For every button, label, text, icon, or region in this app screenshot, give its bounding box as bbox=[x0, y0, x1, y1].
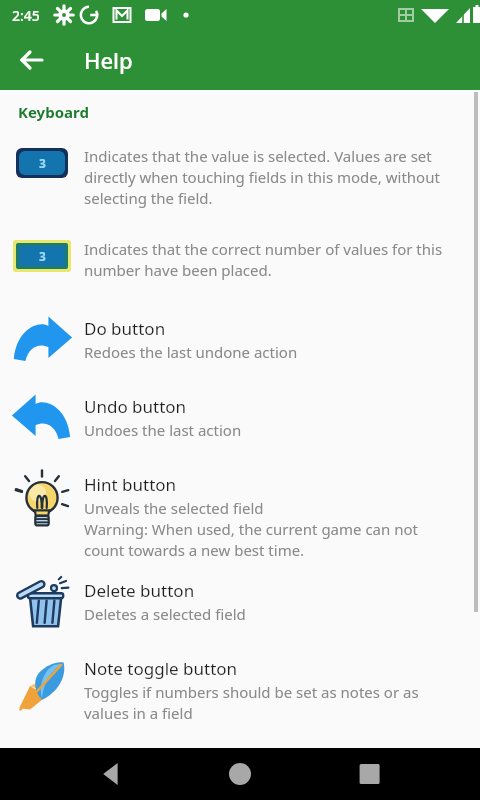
button[interactable]: Delete button bbox=[0, 577, 480, 633]
button[interactable]: 3 bbox=[0, 144, 480, 209]
staticText: Undo button bbox=[84, 395, 187, 418]
button[interactable]: Recents bbox=[348, 752, 392, 796]
staticText: Unveals the selected field Warning: When… bbox=[84, 498, 458, 561]
staticText: Note toggle button bbox=[84, 657, 238, 680]
staticText: 3 bbox=[39, 155, 46, 171]
button[interactable]: Undo button bbox=[0, 393, 480, 443]
staticText: 2:45 bbox=[12, 6, 40, 25]
button[interactable]: 3 bbox=[0, 237, 480, 281]
staticText: Indicates that the value is selected. Va… bbox=[84, 146, 458, 209]
button[interactable]: Home bbox=[218, 752, 262, 796]
button[interactable]: Back bbox=[88, 752, 132, 796]
button[interactable]: Hint button bbox=[0, 471, 480, 561]
staticText: Do button bbox=[84, 317, 166, 340]
button[interactable]: Back bbox=[8, 36, 56, 84]
staticText: Indicates that the correct number of val… bbox=[84, 239, 458, 281]
staticText: Help bbox=[84, 45, 133, 75]
staticText: 3 bbox=[39, 248, 46, 264]
staticText: Toggles if numbers should be set as note… bbox=[84, 682, 458, 724]
button[interactable]: Note toggle button bbox=[0, 655, 480, 724]
staticText: Deletes a selected field bbox=[84, 604, 246, 624]
staticText: Hint button bbox=[84, 473, 177, 496]
staticText: Redoes the last undone action bbox=[84, 342, 298, 362]
button[interactable]: Do button bbox=[0, 315, 480, 365]
staticText: Undoes the last action bbox=[84, 420, 242, 440]
staticText: Delete button bbox=[84, 579, 195, 602]
staticText: Keyboard bbox=[18, 102, 89, 122]
